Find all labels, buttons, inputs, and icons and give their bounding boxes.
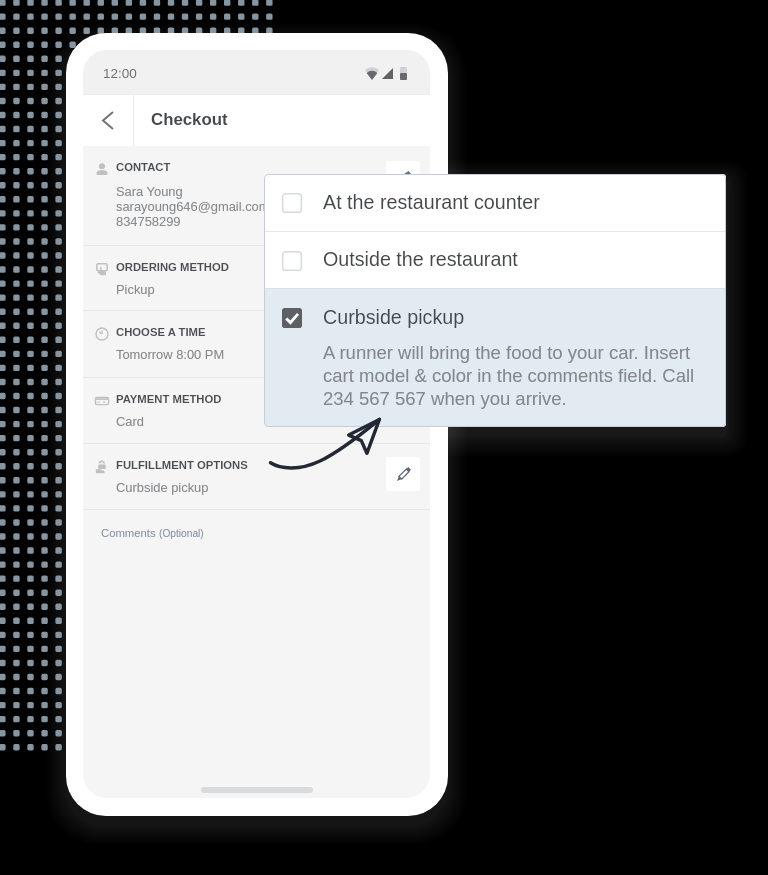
staticText: Card bbox=[116, 414, 144, 429]
staticText: Pickup bbox=[116, 282, 155, 297]
staticText: At the restaurant counter bbox=[323, 193, 540, 213]
staticText: Outside the restaurant bbox=[323, 250, 518, 270]
staticText: Curbside pickup bbox=[116, 480, 209, 495]
staticText: sarayoung646@gmail.com bbox=[116, 199, 270, 214]
staticText: CONTACT bbox=[116, 162, 171, 174]
button[interactable]: Comments bbox=[83, 510, 430, 556]
staticText: FULFILLMENT OPTIONS bbox=[116, 460, 248, 472]
button[interactable]: Curbside pickup bbox=[264, 289, 726, 427]
button[interactable]: Outside the restaurant bbox=[264, 232, 726, 288]
staticText: A runner will bring the food to your car… bbox=[323, 341, 695, 410]
button[interactable]: Back bbox=[83, 94, 133, 146]
staticText: 12:00 bbox=[103, 66, 137, 81]
button[interactable]: FULFILLMENT OPTIONS bbox=[83, 444, 430, 510]
staticText: Curbside pickup bbox=[323, 308, 465, 328]
button[interactable]: CONTACT bbox=[83, 146, 430, 245]
staticText: CHOOSE A TIME bbox=[116, 327, 206, 339]
staticText: (Optional) bbox=[159, 527, 204, 539]
button[interactable]: PAYMENT METHOD bbox=[83, 378, 430, 444]
button[interactable]: ORDERING METHOD bbox=[83, 246, 430, 312]
button[interactable]: Edit CHOOSE A TIME bbox=[386, 324, 420, 358]
button[interactable]: Edit ORDERING METHOD bbox=[386, 259, 420, 293]
button[interactable]: Edit CONTACT bbox=[386, 161, 420, 195]
staticText: Comments bbox=[101, 527, 159, 539]
button[interactable]: CHOOSE A TIME bbox=[83, 311, 430, 377]
staticText: Checkout bbox=[151, 111, 228, 128]
staticText: ORDERING METHOD bbox=[116, 262, 229, 274]
button[interactable]: Edit FULFILLMENT OPTIONS bbox=[386, 457, 420, 491]
button[interactable]: At the restaurant counter bbox=[264, 174, 726, 231]
staticText: Tomorrow 8:00 PM bbox=[116, 347, 225, 362]
staticText: PAYMENT METHOD bbox=[116, 394, 222, 406]
button[interactable]: Edit PAYMENT METHOD bbox=[386, 391, 420, 425]
staticText: 834758299 bbox=[116, 214, 181, 229]
staticText: Sara Young bbox=[116, 184, 183, 199]
